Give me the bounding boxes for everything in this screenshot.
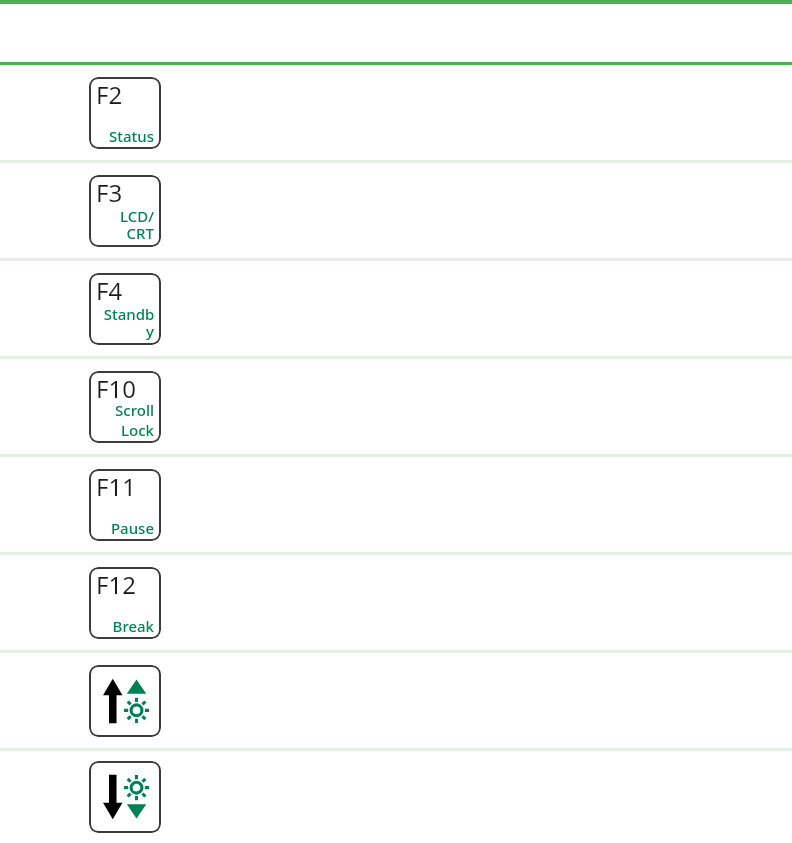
- button[interactable]: F11 Pause: [89, 469, 161, 541]
- staticText: F2: [96, 78, 123, 111]
- staticText: F12: [96, 568, 136, 601]
- staticText: F4: [96, 274, 123, 307]
- staticText: F10: [96, 372, 136, 405]
- button[interactable]: F10 Scroll Lock: [89, 371, 161, 443]
- staticText: Break: [112, 616, 154, 636]
- staticText: F11: [96, 470, 136, 503]
- button[interactable]: Brightness down: [89, 761, 161, 833]
- button[interactable]: F4 Standby: [89, 273, 161, 345]
- button[interactable]: F12 Break: [89, 567, 161, 639]
- button[interactable]: F2 Status: [89, 77, 161, 149]
- staticText: Standby: [96, 304, 154, 342]
- staticText: Scroll: [115, 400, 154, 420]
- staticText: Status: [108, 126, 154, 146]
- staticText: F3: [96, 176, 123, 209]
- button[interactable]: F3 LCD/CRT: [89, 175, 161, 247]
- staticText: Pause: [110, 518, 154, 538]
- button[interactable]: Brightness up: [89, 665, 161, 737]
- staticText: Lock: [121, 420, 154, 440]
- staticText: LCD/CRT: [96, 206, 154, 244]
